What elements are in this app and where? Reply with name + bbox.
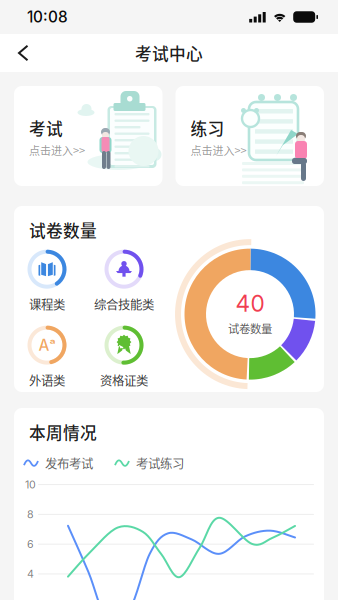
- button[interactable]: 练习: [175, 86, 324, 186]
- staticText: 考试练习: [136, 454, 184, 472]
- staticText: Aᵃ: [38, 336, 55, 354]
- staticText: 考试: [29, 116, 63, 140]
- staticText: 40: [235, 290, 264, 317]
- staticText: 综合技能类: [94, 295, 154, 313]
- staticText: 课程类: [29, 295, 65, 313]
- staticText: 4: [27, 567, 34, 580]
- staticText: 考试中心: [135, 41, 203, 65]
- staticText: 8: [27, 508, 34, 521]
- staticText: 点击进入>>: [190, 142, 246, 158]
- button[interactable]: Back: [0, 34, 43, 72]
- staticText: 外语类: [29, 371, 65, 389]
- staticText: 10:08: [27, 8, 68, 26]
- staticText: 练习: [190, 116, 224, 140]
- staticText: 发布考试: [45, 454, 93, 472]
- staticText: 试卷数量: [228, 320, 272, 336]
- staticText: 试卷数量: [29, 218, 97, 242]
- button[interactable]: 考试: [14, 86, 162, 186]
- staticText: 本周情况: [29, 420, 97, 444]
- staticText: 资格证类: [100, 371, 148, 389]
- staticText: 点击进入>>: [29, 142, 85, 158]
- staticText: 6: [27, 538, 34, 551]
- staticText: 10: [25, 478, 36, 491]
